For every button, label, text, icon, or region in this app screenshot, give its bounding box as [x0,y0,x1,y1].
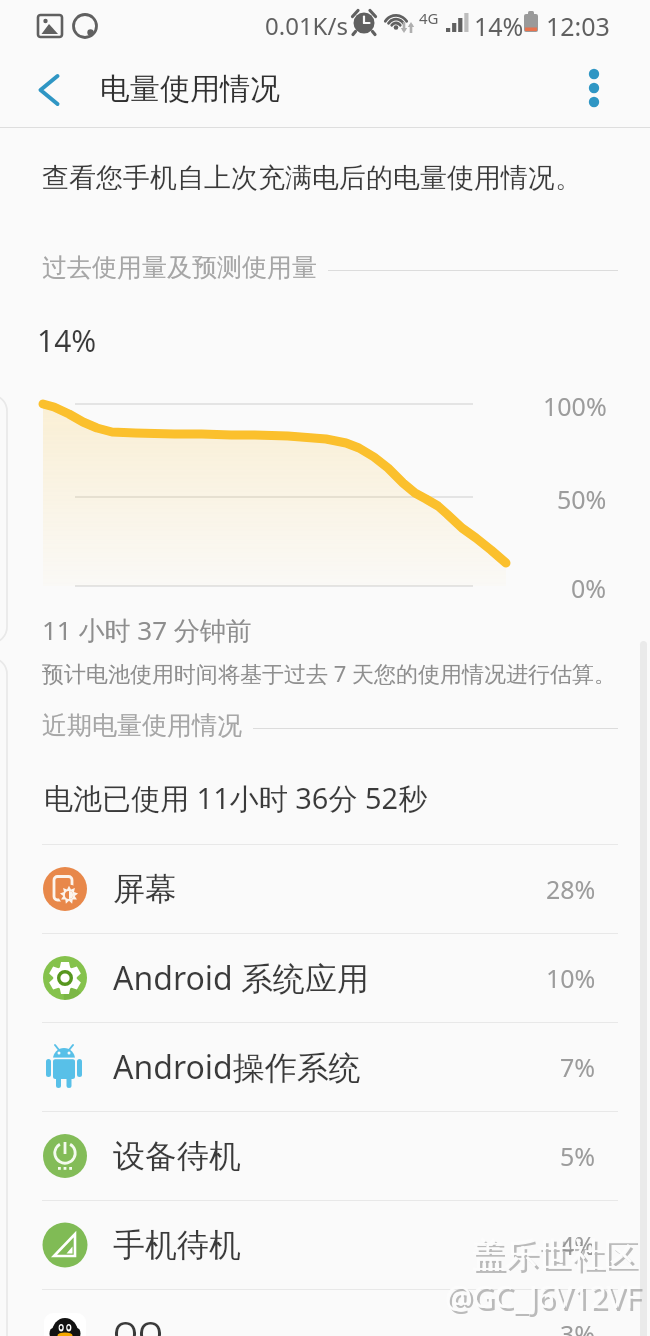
staticText: 电池已使用 11小时 36分 52秒 [44,778,428,818]
button[interactable]: More options [566,56,622,120]
staticText: 盖乐世社区 [475,1237,640,1279]
button[interactable]: QQ [0,1290,650,1336]
staticText: 4% [560,1228,596,1262]
staticText: @GC_J6V12VF [448,1279,644,1320]
staticText: 5% [560,1139,596,1173]
staticText: 手机待机 [113,1225,241,1265]
staticText: 7% [560,1050,596,1084]
button[interactable]: 屏幕 [0,845,650,933]
staticText: 电量使用情况 [100,70,280,108]
button[interactable]: 设备待机 [0,1112,650,1200]
staticText: 查看您手机自上次充满电后的电量使用情况。 [42,161,582,195]
staticText: 0% [571,571,607,605]
staticText: 预计电池使用时间将基于过去 7 天您的使用情况进行估算。 [42,658,617,688]
staticText: 0.01K/s [265,9,348,42]
staticText: 100% [543,389,607,423]
button[interactable]: 手机待机 [0,1201,650,1289]
button[interactable]: Android 系统应用 [0,934,650,1022]
button[interactable]: Android操作系统 [0,1023,650,1111]
staticText: 过去使用量及预测使用量 [42,252,317,283]
staticText: QQ [113,1312,163,1336]
staticText: Android操作系统 [113,1045,361,1089]
staticText: 14% [37,320,97,361]
button[interactable]: Back [18,58,82,122]
staticText: 近期电量使用情况 [42,710,242,741]
staticText: 50% [557,482,607,516]
staticText: Android 系统应用 [113,956,370,1000]
staticText: 14% [474,9,524,43]
staticText: 11 小时 37 分钟前 [42,612,252,648]
staticText: 盖乐世社区 [472,1234,637,1276]
staticText: 28% [546,872,596,906]
staticText: 设备待机 [113,1136,241,1176]
staticText: 4G [419,8,439,28]
staticText: 10% [546,961,596,995]
staticText: 3% [560,1317,596,1336]
staticText: 12:03 [546,9,610,43]
staticText: @GC_J6V12VF [445,1276,641,1317]
staticText: 屏幕 [113,869,177,909]
